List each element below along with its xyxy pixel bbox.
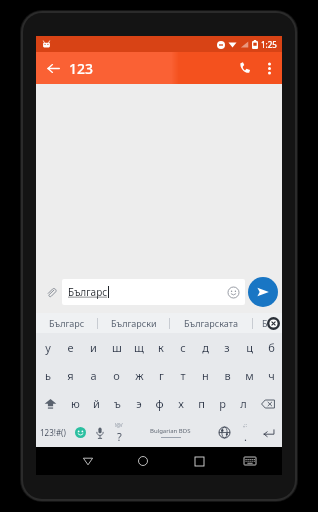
button[interactable]: т [172,361,194,389]
button[interactable]: !@/ [109,418,128,447]
button[interactable]: р [212,389,233,418]
button[interactable]: с [172,333,194,361]
button[interactable]: в [216,361,238,389]
button[interactable]: Българс [36,313,97,333]
staticText: ч [268,368,275,383]
button[interactable]: д [194,333,216,361]
staticText: м [245,368,254,383]
button[interactable]: ш [105,333,128,361]
button[interactable]: Български [98,313,169,333]
staticText: . [244,429,247,444]
staticText: щ [134,340,144,355]
staticText: т [180,368,186,383]
button[interactable]: Voice input [90,418,109,447]
staticText: ф [155,396,164,411]
button[interactable]: е [59,333,82,361]
staticText: ш [112,340,122,355]
staticText: Българс [68,285,108,299]
staticText: ж [135,368,144,383]
button[interactable]: х [170,389,191,418]
button[interactable]: Backspace [254,389,282,418]
button[interactable]: Бъ [253,313,282,333]
button[interactable]: к [150,333,172,361]
staticText: с [180,340,186,355]
button[interactable]: ж [128,361,150,389]
staticText: 123!#() [40,427,66,438]
staticText: ъ [114,396,121,411]
staticText: ь [45,368,51,383]
button[interactable]: я [59,361,82,389]
staticText: р [219,396,226,411]
button[interactable]: ц [238,333,260,361]
button[interactable]: з [216,333,238,361]
staticText: я [67,368,74,383]
staticText: ц [246,340,253,355]
staticText: д [202,340,209,355]
button[interactable]: More options [258,57,280,79]
button[interactable]: Back [41,56,65,80]
staticText: у [45,340,51,355]
staticText: й [93,396,100,411]
button[interactable]: б [260,333,282,361]
button[interactable]: Българската [170,313,252,333]
staticText: 123 [69,59,94,78]
button[interactable]: Emoji [225,284,241,300]
staticText: ,;: [243,422,248,429]
button[interactable]: щ [128,333,150,361]
staticText: н [202,368,209,383]
button[interactable]: и [82,333,105,361]
staticText: к [158,340,164,355]
staticText: о [113,368,120,383]
staticText: в [224,368,231,383]
button[interactable]: м [238,361,260,389]
button[interactable]: п [191,389,212,418]
staticText: э [136,396,142,411]
staticText: и [90,340,97,355]
button[interactable]: 123!#() [36,418,70,447]
button[interactable]: Call [232,55,258,81]
staticText: 1:25 [261,39,277,50]
staticText: г [159,368,164,383]
button[interactable]: Enter [255,418,282,447]
staticText: !@/ [115,422,123,429]
button[interactable]: ъ [107,389,128,418]
staticText: Bulgarian BDS [150,427,191,435]
button[interactable]: Emoji keyboard [70,418,90,447]
button[interactable]: а [82,361,105,389]
staticText: з [224,340,230,355]
staticText: ? [117,429,122,444]
button[interactable]: й [86,389,107,418]
staticText: а [90,368,97,383]
button[interactable]: э [128,389,149,418]
button[interactable]: ,;: [236,418,255,447]
button[interactable]: Keyboard [240,451,260,471]
button[interactable]: ф [149,389,170,418]
button[interactable]: Attach [40,281,62,303]
button[interactable]: Space [128,418,213,447]
button[interactable]: о [105,361,128,389]
button[interactable]: г [150,361,172,389]
button[interactable]: Recent apps [187,449,211,473]
staticText: п [198,396,205,411]
staticText: б [268,340,275,355]
button[interactable]: Send [248,277,278,307]
button[interactable]: л [233,389,254,418]
staticText: Българската [184,317,238,329]
button[interactable]: Change language [213,418,236,447]
button[interactable]: Shift [36,389,65,418]
button[interactable]: н [194,361,216,389]
button[interactable]: Българс [62,279,245,305]
staticText: л [240,396,247,411]
staticText: е [67,340,74,355]
button[interactable]: Home [131,449,155,473]
button[interactable]: Close suggestions [267,317,280,330]
button[interactable]: ь [36,361,59,389]
button[interactable]: ч [260,361,282,389]
button[interactable]: Back [76,449,100,473]
staticText: ю [71,396,80,411]
button[interactable]: ю [65,389,86,418]
button[interactable]: у [36,333,59,361]
staticText: Български [111,317,157,329]
staticText: х [178,396,184,411]
staticText: Бъ [262,317,274,329]
